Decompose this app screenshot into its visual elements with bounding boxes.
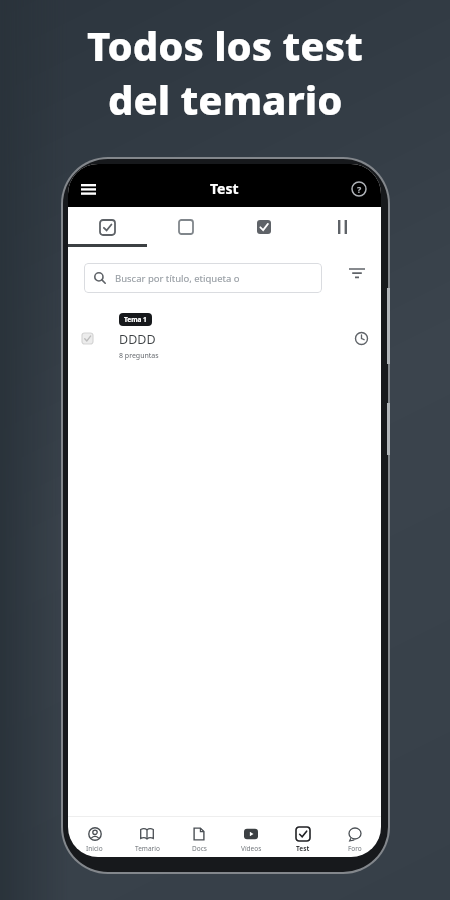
staticText: ? — [357, 183, 362, 195]
button[interactable] — [343, 259, 371, 287]
button[interactable]: Docs — [173, 822, 225, 857]
button[interactable]: Foro — [329, 822, 381, 857]
button[interactable]: ? — [351, 181, 367, 197]
button[interactable]: Tema 1 — [68, 313, 381, 363]
staticText: Test — [296, 844, 310, 853]
button[interactable] — [147, 207, 225, 247]
button[interactable] — [74, 175, 102, 203]
staticText: Docs — [192, 844, 207, 853]
staticText: 8 preguntas — [119, 351, 159, 361]
staticText: Foro — [348, 844, 362, 853]
staticText: Todos los test — [87, 18, 363, 72]
button[interactable] — [225, 207, 303, 247]
staticText: DDDD — [119, 331, 156, 348]
staticText: Temario — [135, 844, 160, 853]
button[interactable]: Test — [277, 822, 329, 857]
button[interactable]: Buscar por título, etiqueta o — [84, 263, 322, 293]
button[interactable] — [68, 207, 147, 247]
button[interactable]: Vídeos — [225, 822, 277, 857]
staticText: Inicio — [86, 844, 103, 853]
staticText: Buscar por título, etiqueta o — [115, 272, 240, 285]
button[interactable]: Inicio — [68, 822, 121, 857]
staticText: del temario — [108, 72, 343, 126]
button[interactable] — [303, 207, 381, 247]
staticText: Test — [210, 179, 239, 198]
staticText: Tema 1 — [124, 315, 147, 324]
staticText: Vídeos — [241, 844, 262, 853]
button[interactable]: Temario — [121, 822, 173, 857]
